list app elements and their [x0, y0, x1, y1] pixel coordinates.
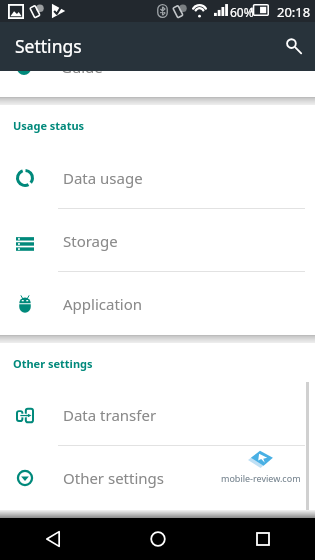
- staticText: Data transfer: [63, 405, 157, 425]
- staticText: Data usage: [63, 168, 143, 188]
- button[interactable]: Data transfer: [0, 383, 315, 446]
- button[interactable]: Search: [269, 25, 313, 69]
- staticText: mobile-review.com: [221, 472, 301, 484]
- button[interactable]: Back: [0, 518, 105, 560]
- staticText: Other settings: [13, 356, 93, 371]
- button[interactable]: Application: [0, 272, 315, 335]
- staticText: 60%: [230, 4, 254, 20]
- button[interactable]: Other settings: [0, 446, 315, 509]
- staticText: Usage status: [13, 118, 85, 133]
- staticText: Guide: [61, 57, 103, 77]
- button[interactable]: Storage: [0, 209, 315, 272]
- staticText: Application: [63, 294, 143, 314]
- staticText: Storage: [63, 231, 118, 251]
- staticText: Settings: [15, 34, 82, 58]
- button[interactable]: Home: [105, 518, 210, 560]
- staticText: Other settings: [63, 468, 164, 488]
- button[interactable]: Data usage: [0, 146, 315, 209]
- staticText: 20:18: [277, 3, 311, 21]
- button[interactable]: Recents: [210, 518, 315, 560]
